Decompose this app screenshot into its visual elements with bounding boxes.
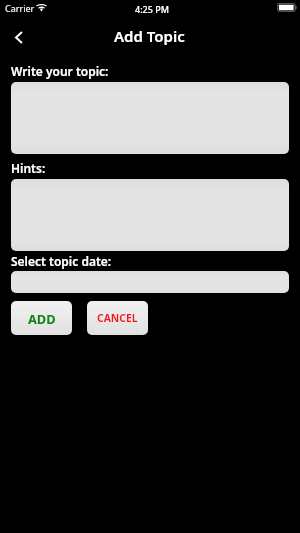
button[interactable]: Select topic date (11, 271, 289, 293)
button[interactable]: CANCEL (87, 301, 148, 335)
staticText: ADD (28, 310, 56, 327)
button[interactable]: Write your topic (11, 82, 289, 154)
staticText: Select topic date: (11, 253, 112, 269)
other: Battery full (277, 3, 297, 12)
staticText: Carrier (5, 2, 35, 14)
staticText: Add Topic (114, 26, 185, 46)
staticText: Hints: (11, 160, 46, 176)
other: Wi-Fi signal (36, 3, 47, 12)
staticText: CANCEL (97, 311, 138, 325)
button[interactable]: Back (5, 24, 33, 50)
staticText: 4:25 PM (135, 3, 169, 15)
button[interactable]: Hints (11, 179, 289, 251)
button[interactable]: ADD (11, 301, 72, 335)
staticText: Write your topic: (11, 63, 109, 79)
